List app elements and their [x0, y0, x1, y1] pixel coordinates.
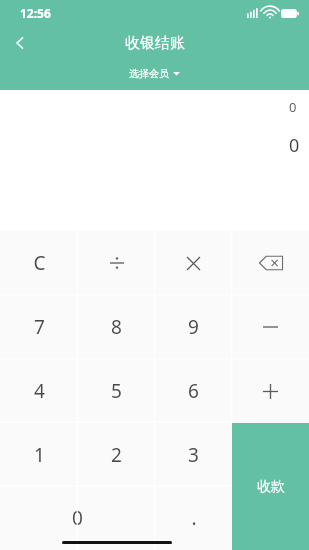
staticText: 0 — [289, 133, 300, 158]
button[interactable]: . — [155, 486, 232, 550]
button[interactable]: 6 — [155, 359, 232, 423]
button[interactable]: 2 — [78, 423, 155, 486]
button[interactable]: 3 — [155, 423, 232, 486]
button[interactable]: 4 — [0, 359, 78, 423]
button[interactable]: 1 — [0, 423, 78, 486]
staticText: 12:56 — [20, 5, 51, 21]
staticText: 1 — [34, 442, 45, 468]
button[interactable]: 收款 — [232, 423, 309, 550]
button[interactable]: 选择会员 — [129, 67, 180, 80]
staticText: 选择会员 — [129, 67, 169, 80]
staticText: 3 — [188, 442, 199, 468]
button[interactable]: 5 — [78, 359, 155, 423]
button[interactable]: 0 — [0, 486, 155, 550]
button[interactable] — [232, 295, 309, 359]
staticText: 9 — [188, 314, 199, 340]
staticText: . — [191, 505, 197, 531]
button[interactable]: 8 — [78, 295, 155, 359]
button[interactable] — [155, 231, 232, 295]
staticText: 0 — [72, 505, 83, 531]
staticText: 5 — [111, 378, 122, 404]
staticText: 收款 — [257, 478, 285, 496]
button[interactable]: Back — [0, 26, 40, 60]
button[interactable]: 7 — [0, 295, 78, 359]
staticText: 收银结账 — [125, 34, 185, 53]
staticText: C — [33, 250, 46, 276]
staticText: 7 — [34, 314, 45, 340]
button[interactable] — [232, 359, 309, 423]
staticText: 4 — [34, 378, 45, 404]
staticText: 8 — [111, 314, 122, 340]
staticText: 0 — [289, 98, 297, 116]
staticText: 2 — [111, 442, 122, 468]
button[interactable] — [78, 231, 155, 295]
button[interactable] — [232, 231, 309, 295]
staticText: 6 — [188, 378, 199, 404]
button[interactable]: C — [0, 231, 78, 295]
button[interactable]: 9 — [155, 295, 232, 359]
